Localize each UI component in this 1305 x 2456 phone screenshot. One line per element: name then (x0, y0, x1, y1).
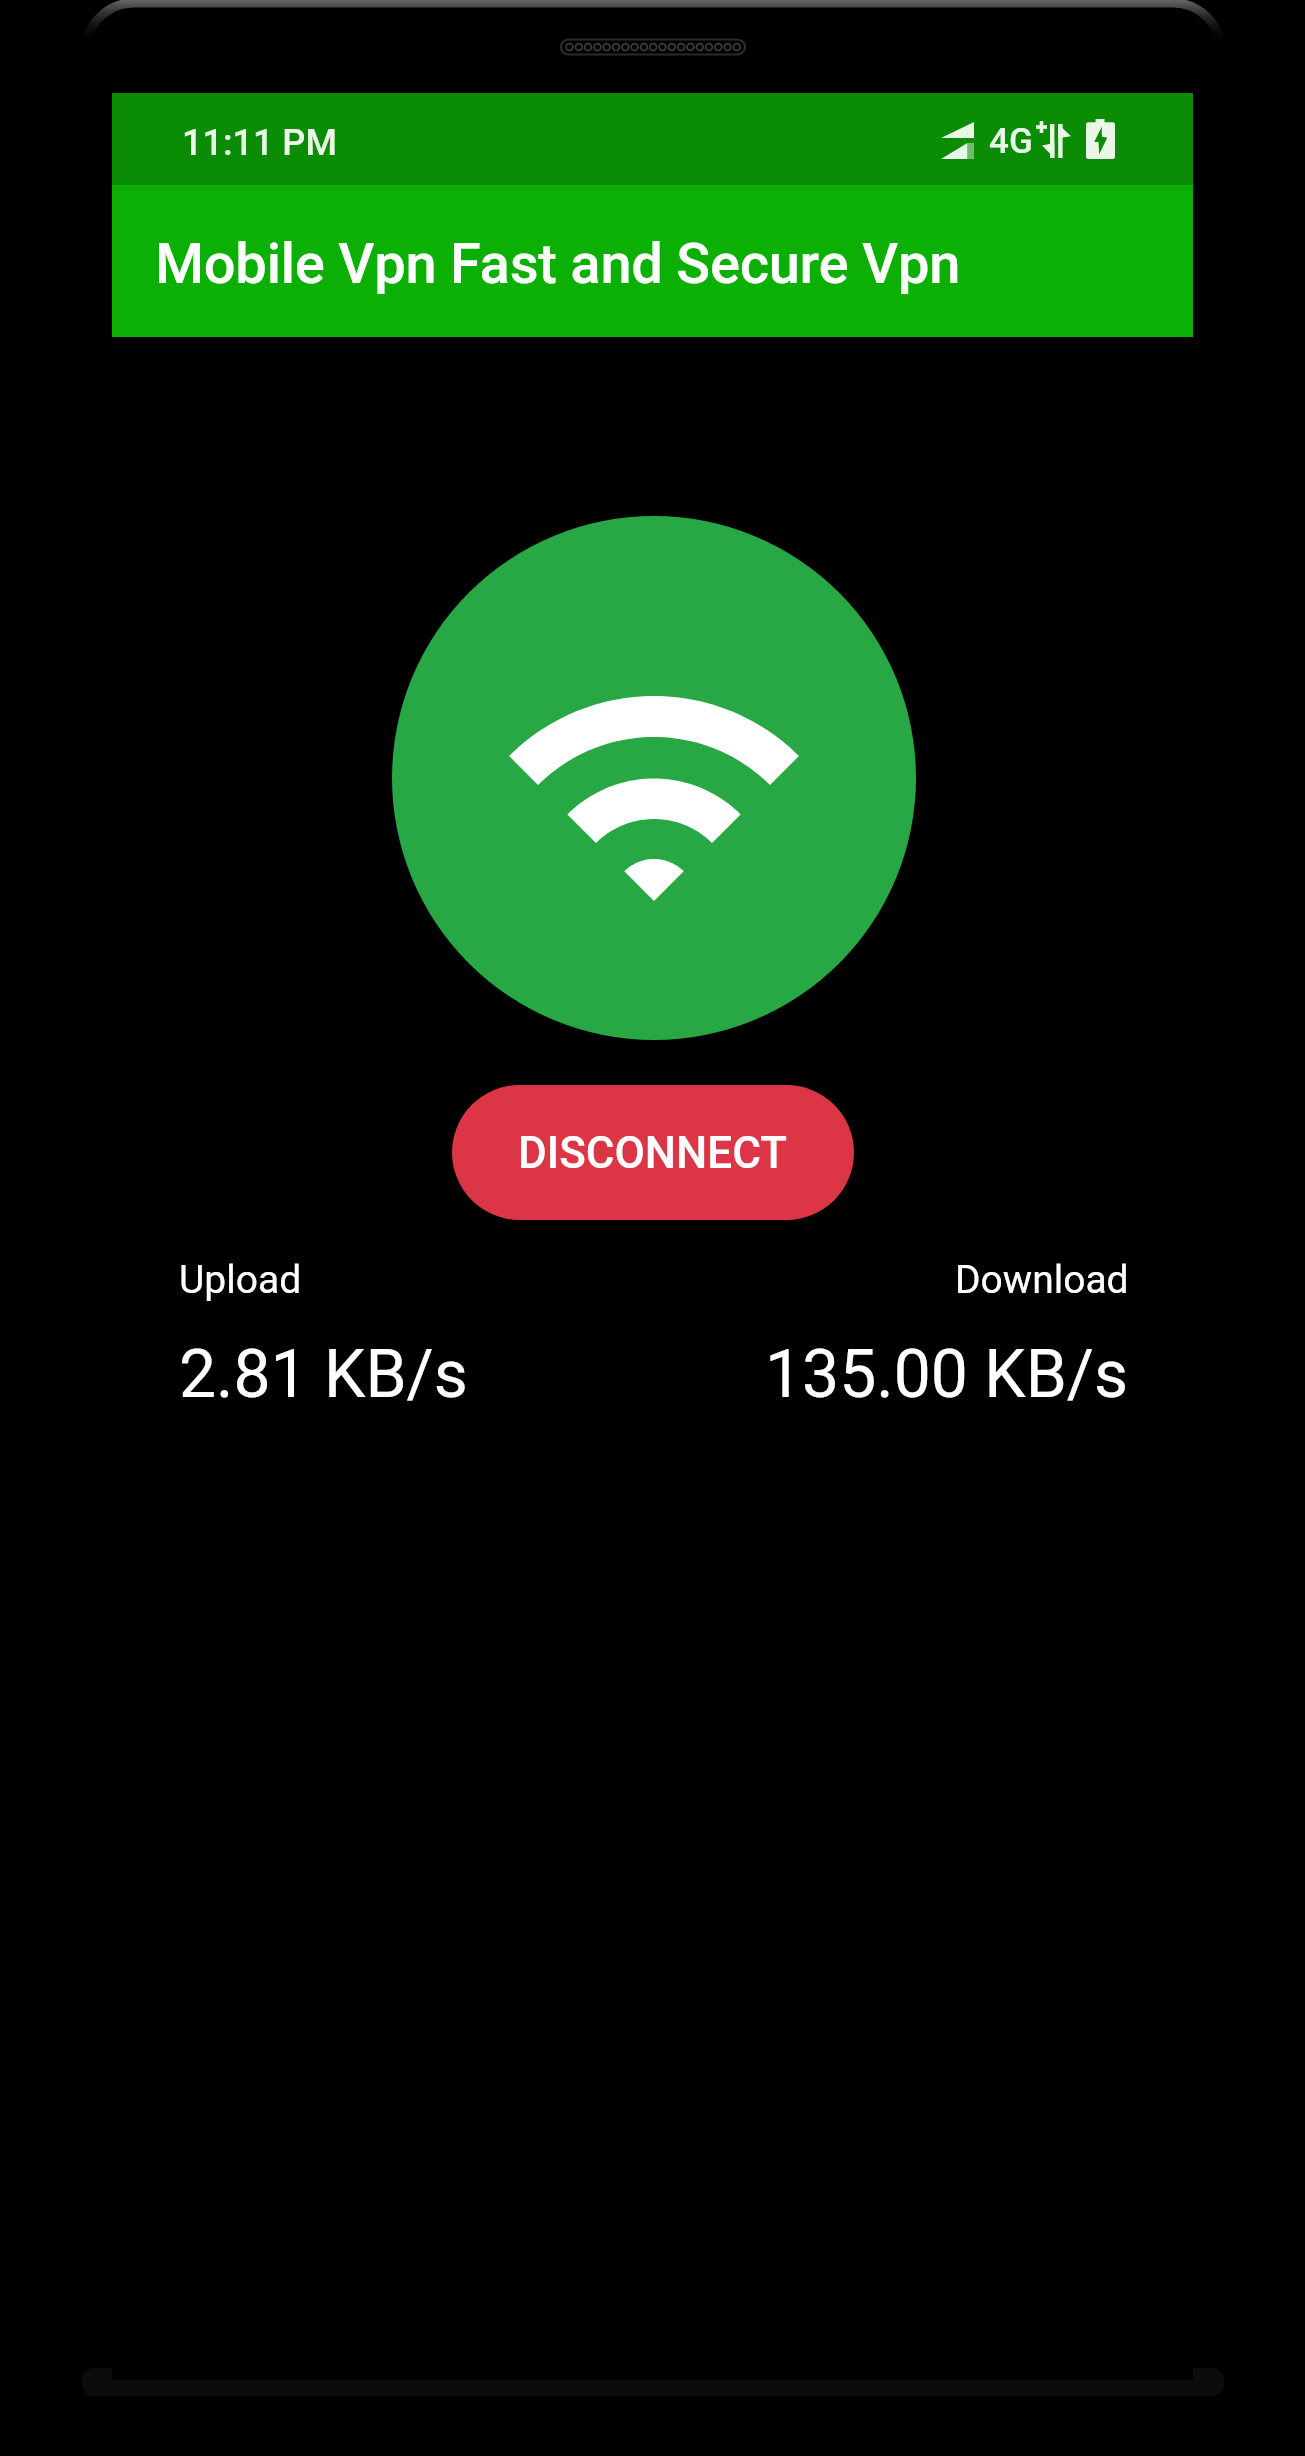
staticText: DISCONNECT (518, 1127, 788, 1179)
staticText: 4G (989, 121, 1033, 162)
staticText: Mobile Vpn Fast and Secure Vpn (155, 231, 961, 297)
staticText: Upload (179, 1257, 302, 1303)
staticText: 135.00 KB/s (765, 1336, 1129, 1413)
staticText: 2.81 KB/s (179, 1336, 468, 1413)
button[interactable]: DISCONNECT (452, 1085, 854, 1220)
staticText: 11:11 PM (182, 122, 337, 164)
button[interactable]: VPN connected, tap to toggle (392, 516, 916, 1040)
staticText: Download (955, 1257, 1129, 1303)
